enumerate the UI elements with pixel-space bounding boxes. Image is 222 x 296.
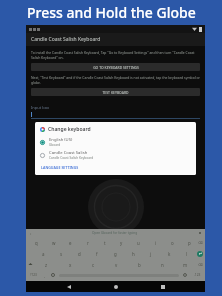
button[interactable]: Previous <box>29 231 33 235</box>
button[interactable]: k <box>160 248 178 259</box>
staticText: y <box>120 240 123 246</box>
staticText: Next, "Test Keyboard" and if the Candle … <box>31 75 200 85</box>
staticText: Candle Coast Salish <box>49 150 88 156</box>
staticText: Open Gboard for faster typing <box>92 231 138 235</box>
button[interactable]: j <box>142 248 160 259</box>
button[interactable]: Home <box>111 282 120 291</box>
button[interactable]: a <box>35 248 52 259</box>
button[interactable]: Voice input <box>183 273 187 277</box>
button[interactable]: p <box>181 237 198 248</box>
staticText: ‹ <box>30 231 32 235</box>
staticText: English (US) <box>49 137 73 143</box>
staticText: Change keyboard <box>48 126 91 133</box>
button[interactable]: Keyboard settings <box>198 231 202 235</box>
staticText: ⌫ <box>198 241 203 245</box>
staticText: o <box>171 240 174 246</box>
staticText: ↵ <box>199 252 202 256</box>
staticText: ?123 <box>30 273 37 277</box>
button[interactable]: Backspace <box>198 240 203 245</box>
button[interactable]: v <box>105 259 128 270</box>
staticText: w <box>52 240 56 246</box>
button[interactable]: Shift <box>28 262 33 267</box>
button[interactable]: Emoji <box>51 273 55 277</box>
staticText: f <box>96 251 98 257</box>
button[interactable]: d <box>70 248 88 259</box>
staticText: b <box>138 262 141 268</box>
staticText: TEST KEYBOARD <box>102 90 129 95</box>
button[interactable]: Backspace <box>198 262 203 267</box>
button[interactable]: .123 <box>194 273 201 277</box>
staticText: p <box>188 240 191 246</box>
staticText: r <box>87 240 89 246</box>
staticText: i <box>155 240 157 246</box>
staticText: c <box>92 262 95 268</box>
button[interactable]: ?123 <box>30 273 37 277</box>
staticText: e <box>69 240 72 246</box>
staticText: .123 <box>194 273 201 277</box>
button[interactable]: q <box>28 237 45 248</box>
button[interactable]: GO TO KEYBOARD SETTINGS <box>31 63 200 71</box>
staticText: a <box>42 251 45 257</box>
button[interactable]: o <box>164 237 181 248</box>
staticText: u <box>137 240 140 246</box>
staticText: g <box>114 251 117 257</box>
button[interactable]: u <box>130 237 147 248</box>
button[interactable]: , <box>44 273 45 278</box>
staticText: Press and Hold the Globe <box>27 3 196 22</box>
staticText: t <box>104 240 106 246</box>
button[interactable]: LANGUAGE SETTINGS <box>40 164 80 171</box>
button[interactable]: e <box>62 237 79 248</box>
staticText: To install the Candle Coast Salish Keybo… <box>31 50 200 60</box>
staticText: m <box>183 262 188 268</box>
staticText: GO TO KEYBOARD SETTINGS <box>93 65 139 70</box>
staticText: Gboard <box>49 143 61 147</box>
staticText: Input box <box>31 105 50 110</box>
staticText: x <box>69 262 72 268</box>
button[interactable]: f <box>88 248 106 259</box>
button[interactable]: Recents <box>158 282 167 291</box>
button[interactable]: y <box>113 237 130 248</box>
staticText: q <box>35 240 38 246</box>
button[interactable]: Candle Coast Salish Keyboard <box>26 33 205 46</box>
staticText: s <box>60 251 63 257</box>
button[interactable]: s <box>52 248 70 259</box>
button[interactable]: m <box>174 259 197 270</box>
staticText: l <box>186 251 188 257</box>
button[interactable]: l <box>178 248 196 259</box>
staticText: z <box>45 262 48 268</box>
button[interactable]: t <box>96 237 113 248</box>
staticText: Candle Coast Salish Keyboard <box>49 156 94 160</box>
button[interactable]: b <box>128 259 151 270</box>
button[interactable]: r <box>79 237 96 248</box>
button[interactable]: English (US) <box>40 137 191 147</box>
button[interactable]: w <box>45 237 62 248</box>
button[interactable]: i <box>147 237 164 248</box>
button[interactable]: c <box>82 259 105 270</box>
button[interactable]: g <box>106 248 124 259</box>
button[interactable]: n <box>151 259 174 270</box>
button[interactable]: h <box>124 248 142 259</box>
staticText: ⌫ <box>198 263 203 267</box>
button[interactable]: x <box>58 259 82 270</box>
button[interactable]: Enter <box>197 251 203 257</box>
staticText: h <box>132 251 135 257</box>
staticText: , <box>44 273 45 278</box>
staticText: k <box>168 251 171 257</box>
staticText: d <box>78 251 81 257</box>
staticText: j <box>150 251 152 257</box>
button[interactable]: Candle Coast Salish <box>40 150 191 160</box>
staticText: Candle Coast Salish Keyboard <box>31 36 101 43</box>
staticText: LANGUAGE SETTINGS <box>41 165 79 170</box>
button[interactable]: z <box>34 259 58 270</box>
button[interactable]: Back <box>64 282 73 291</box>
button[interactable]: TEST KEYBOARD <box>31 88 200 96</box>
staticText: n <box>161 262 164 268</box>
staticText: v <box>115 262 118 268</box>
